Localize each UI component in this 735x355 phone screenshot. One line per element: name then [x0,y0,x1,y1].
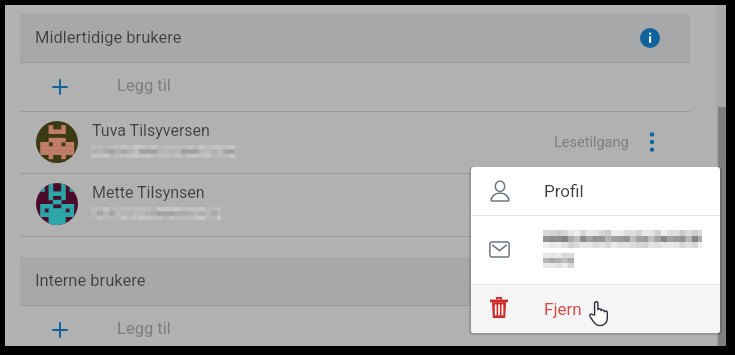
button[interactable]: Info [640,28,660,48]
staticText: Interne brukere [35,271,146,290]
staticText: Legg til [117,319,171,338]
button[interactable]: Interne brukere [20,257,690,305]
button[interactable]: Midlertidige brukere [20,14,690,62]
button[interactable]: Fjern [471,285,720,333]
button[interactable]: Profil [471,167,720,215]
button[interactable]: Tuva Tilsyversen [5,111,716,173]
button[interactable]: Legg til [5,305,716,346]
staticText: Lesetilgang [554,134,629,151]
staticText: Tuva Tilsyversen [92,121,210,140]
button[interactable] [471,216,720,284]
staticText: Midlertidige brukere [35,28,182,47]
staticText: Mette Tilsynsen [92,183,205,202]
staticText: Profil [544,181,584,201]
button[interactable]: Mette Tilsynsen [5,173,716,235]
button[interactable]: More options [639,129,665,155]
staticText: Legg til [117,76,171,95]
staticText: Fjern [544,299,582,319]
button[interactable]: Legg til [5,62,716,111]
